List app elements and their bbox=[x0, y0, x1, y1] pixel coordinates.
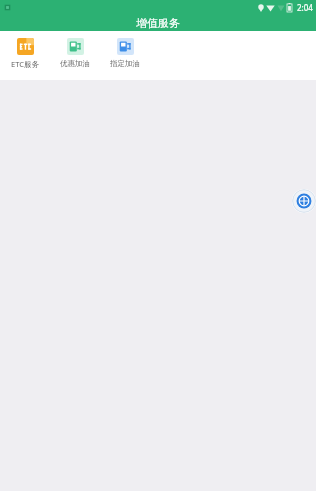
other: ETC服务 bbox=[17, 38, 34, 55]
button[interactable]: 加油 bbox=[100, 36, 150, 70]
other: 加油 bbox=[67, 38, 84, 55]
button[interactable]: 加油 bbox=[50, 36, 100, 70]
staticText: 2:04 bbox=[297, 2, 313, 13]
other: 加油 bbox=[117, 38, 134, 55]
button[interactable]: 定位 bbox=[292, 189, 316, 213]
staticText: ETC服务 bbox=[11, 59, 39, 69]
staticText: 优惠加油 bbox=[60, 59, 90, 68]
staticText: 指定加油 bbox=[110, 59, 140, 68]
staticText: 增值服务 bbox=[136, 16, 180, 30]
button[interactable]: ETC服务 bbox=[0, 36, 50, 71]
